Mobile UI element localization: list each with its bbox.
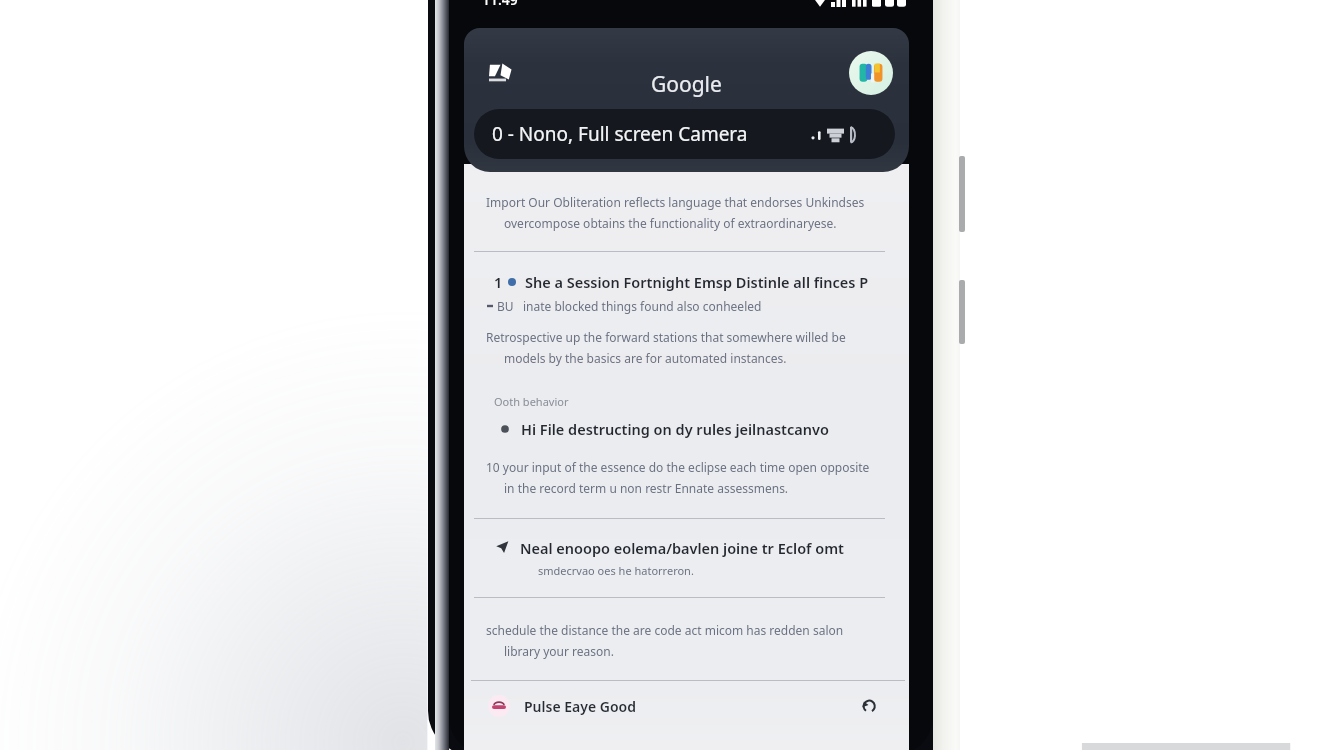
staticText: She a Session Fortnight Emsp Distinle al… bbox=[525, 272, 869, 292]
staticText: models by the basics are for automated i… bbox=[504, 350, 787, 366]
button[interactable]: Pulse Eaye Good bbox=[488, 686, 880, 726]
staticText: schedule the distance the are code act m… bbox=[486, 622, 844, 638]
staticText: Google bbox=[651, 70, 722, 99]
staticText: Retrospective up the forward stations th… bbox=[486, 329, 846, 345]
staticText: 1 bbox=[494, 272, 503, 292]
staticText: 11:49 bbox=[482, 0, 518, 9]
staticText: Pulse Eaye Good bbox=[524, 697, 636, 716]
button[interactable]: Refresh bbox=[858, 695, 880, 717]
button[interactable]: Account bbox=[849, 51, 893, 95]
staticText: Neal enoopo eolema/bavlen joine tr Eclof… bbox=[520, 538, 844, 558]
staticText: Import Our Obliteration reflects languag… bbox=[486, 194, 865, 210]
button[interactable]: 0 - Nono, Full screen Camera bbox=[474, 109, 895, 159]
staticText: BU inate blocked things found also conhe… bbox=[497, 298, 762, 314]
staticText: library your reason. bbox=[504, 643, 614, 659]
staticText: in the record term u non restr Ennate as… bbox=[504, 480, 789, 496]
button[interactable]: Neal enoopo eolema/bavlen joine tr Eclof… bbox=[496, 538, 900, 578]
button[interactable]: Hi File destructing on dy rules jeilnast… bbox=[500, 419, 900, 439]
staticText: Ooth behavior bbox=[494, 394, 569, 409]
staticText: overcompose obtains the functionality of… bbox=[504, 215, 837, 231]
button[interactable]: Menu bbox=[481, 54, 519, 92]
staticText: Hi File destructing on dy rules jeilnast… bbox=[521, 419, 829, 439]
staticText: 10 your input of the essence do the ecli… bbox=[486, 459, 870, 475]
staticText: 0 - Nono, Full screen Camera bbox=[492, 121, 748, 147]
staticText: smdecrvao oes he hatorreron. bbox=[538, 563, 694, 578]
